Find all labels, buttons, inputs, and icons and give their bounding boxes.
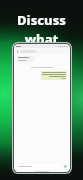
other: Back bbox=[16, 50, 19, 53]
button[interactable] bbox=[16, 164, 61, 169]
button[interactable] bbox=[41, 71, 67, 80]
button[interactable]: Send bbox=[63, 164, 68, 169]
staticText: what matters bbox=[0, 30, 83, 66]
staticText: Discuss bbox=[17, 11, 66, 29]
button[interactable]: Back bbox=[14, 48, 70, 54]
button[interactable] bbox=[17, 56, 34, 62]
